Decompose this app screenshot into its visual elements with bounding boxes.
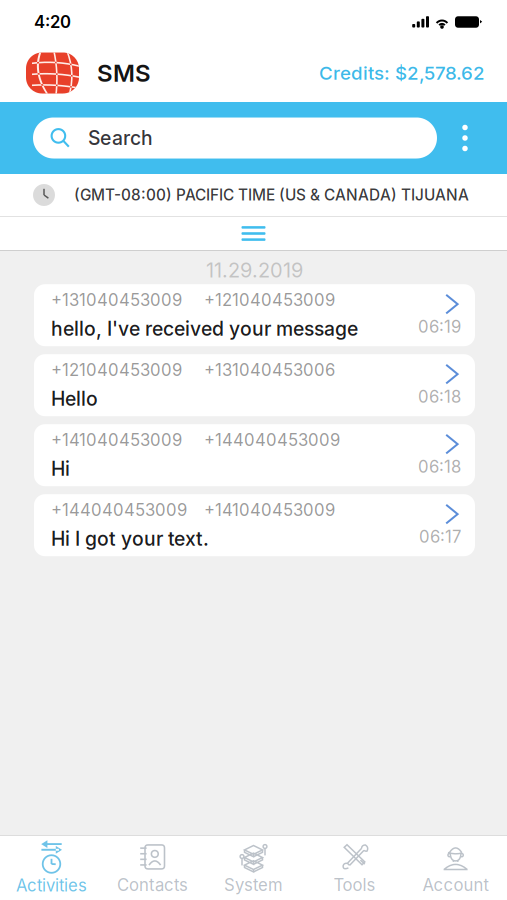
button[interactable]: +131040453009 — [34, 284, 475, 346]
staticText: hello, I've received your message — [51, 317, 358, 340]
staticText: +141040453009 — [51, 430, 182, 450]
staticText: Tools — [333, 875, 375, 895]
button[interactable]: +121040453009 — [34, 354, 475, 416]
staticText: Account — [422, 875, 488, 895]
button[interactable]: Account — [405, 836, 506, 900]
staticText: +144040453009 — [204, 430, 340, 450]
staticText: Contacts — [117, 875, 188, 895]
button[interactable]: Filter — [0, 217, 507, 250]
staticText: +121040453009 — [204, 290, 335, 310]
staticText: 06:17 — [419, 527, 461, 547]
staticText: +131040453006 — [204, 360, 335, 380]
staticText: +131040453009 — [51, 290, 182, 310]
staticText: +141040453009 — [204, 500, 335, 520]
button[interactable]: More options — [437, 117, 493, 159]
button[interactable]: +144040453009 — [34, 494, 475, 556]
staticText: 06:19 — [418, 317, 461, 337]
button[interactable]: System — [203, 836, 304, 900]
staticText: 06:18 — [418, 457, 461, 477]
button[interactable]: +141040453009 — [34, 424, 475, 486]
staticText: 06:18 — [418, 387, 461, 407]
staticText: Search — [88, 126, 153, 150]
button[interactable]: Credits: $2,578.62 — [319, 62, 485, 84]
staticText: Credits: $2,578.62 — [319, 62, 485, 84]
staticText: Hi — [51, 457, 70, 480]
staticText: +144040453009 — [51, 500, 187, 520]
staticText: SMS — [97, 58, 151, 87]
staticText: 4:20 — [34, 12, 71, 32]
staticText: System — [224, 875, 283, 895]
staticText: 11.29.2019 — [206, 258, 303, 282]
staticText: Activities — [16, 875, 87, 896]
staticText: Hi I got your text. — [51, 527, 209, 550]
button[interactable]: Tools — [304, 836, 405, 900]
staticText: Hello — [51, 387, 98, 410]
staticText: +121040453009 — [51, 360, 182, 380]
button[interactable]: Activities — [1, 836, 102, 900]
staticText: (GMT-08:00) PACIFIC TIME (US & CANADA) T… — [74, 186, 469, 204]
button[interactable]: Contacts — [102, 836, 203, 900]
